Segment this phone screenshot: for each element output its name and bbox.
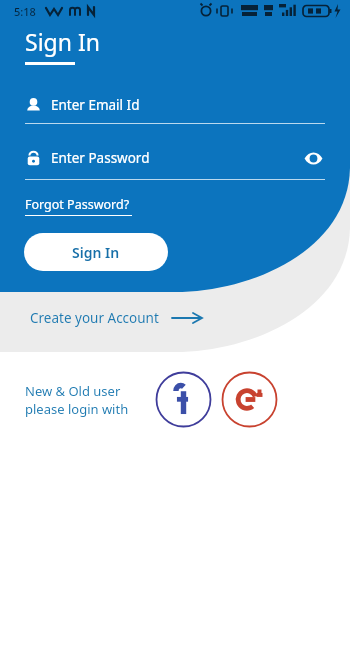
button[interactable]: Show password: [301, 146, 325, 170]
button[interactable]: Create your Account: [30, 309, 202, 327]
staticText: Enter Email Id: [51, 96, 140, 114]
staticText: New & Old user: [25, 382, 121, 400]
button[interactable]: Sign in with Google: [221, 371, 278, 428]
staticText: Enter Password: [51, 149, 150, 167]
staticText: 5:18: [14, 4, 36, 19]
staticText: Sign In: [72, 243, 120, 262]
staticText: Forgot Password?: [25, 196, 130, 213]
button[interactable]: Enter Email Id: [25, 96, 325, 124]
staticText: please login with: [25, 400, 129, 418]
button[interactable]: Sign in with Facebook: [155, 371, 212, 428]
staticText: Sign In: [25, 26, 100, 57]
staticText: Create your Account: [30, 309, 159, 327]
button[interactable]: Forgot Password?: [25, 196, 132, 216]
button[interactable]: Enter Password: [25, 149, 301, 167]
button[interactable]: Sign In: [24, 233, 168, 271]
